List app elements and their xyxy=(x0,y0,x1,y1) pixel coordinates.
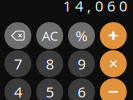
staticText: % xyxy=(75,26,87,45)
staticText: 4 xyxy=(14,82,22,100)
button[interactable]: Subtract xyxy=(100,78,127,100)
staticText: 9 xyxy=(77,54,85,73)
staticText: 7 xyxy=(14,54,22,73)
button[interactable]: 5 xyxy=(36,78,63,100)
staticText: 6 xyxy=(77,82,85,100)
button[interactable]: 4 xyxy=(4,78,31,100)
staticText: AC xyxy=(42,27,58,44)
button[interactable]: Divide xyxy=(100,22,127,49)
button[interactable]: 8 xyxy=(36,50,63,77)
button[interactable]: Multiply xyxy=(100,50,127,77)
button[interactable]: Delete xyxy=(4,22,31,49)
button[interactable]: 7 xyxy=(4,50,31,77)
staticText: 1 4 , 0 6 0 xyxy=(63,0,127,16)
button[interactable]: AC xyxy=(36,22,63,49)
button[interactable]: % xyxy=(68,22,95,49)
staticText: 5 xyxy=(46,82,54,100)
staticText: 8 xyxy=(46,54,54,73)
button[interactable]: 9 xyxy=(68,50,95,77)
button[interactable]: 6 xyxy=(68,78,95,100)
